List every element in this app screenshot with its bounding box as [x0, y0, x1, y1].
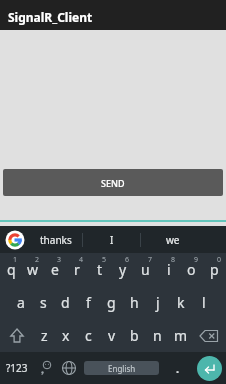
staticText: a	[17, 293, 25, 312]
button[interactable]	[57, 352, 80, 384]
button[interactable]: x	[55, 319, 77, 352]
staticText: 9	[194, 255, 199, 265]
button[interactable]: we	[141, 226, 205, 253]
staticText: w	[27, 260, 39, 279]
button[interactable]: t	[88, 253, 111, 286]
staticText: thanks	[40, 233, 72, 247]
button[interactable]	[0, 319, 33, 352]
button[interactable]: n	[146, 319, 169, 352]
button[interactable]: j	[146, 286, 169, 319]
button[interactable]	[0, 226, 30, 253]
staticText: 0	[217, 255, 222, 265]
button[interactable]: s	[32, 286, 54, 319]
button[interactable]: SignalR_Client	[0, 0, 226, 30]
staticText: g	[107, 293, 116, 312]
button[interactable]: i	[157, 253, 180, 286]
staticText: c	[85, 326, 92, 345]
staticText: 4	[79, 255, 84, 265]
staticText: q	[7, 260, 16, 279]
staticText: SEND	[101, 177, 125, 189]
staticText: 5	[102, 255, 107, 265]
button[interactable]: v	[100, 319, 123, 352]
staticText: o	[187, 260, 196, 279]
staticText: 2	[35, 255, 40, 265]
staticText: z	[41, 326, 48, 345]
staticText: 3	[57, 255, 62, 265]
staticText: f	[86, 293, 91, 312]
staticText: b	[130, 326, 139, 345]
staticText: m	[174, 326, 188, 345]
staticText: .	[176, 361, 180, 376]
staticText: p	[210, 260, 219, 279]
staticText: i	[167, 260, 171, 279]
staticText: ?123	[6, 361, 28, 375]
button[interactable]	[192, 352, 226, 384]
staticText: 7	[148, 255, 153, 265]
button[interactable]: w	[22, 253, 44, 286]
staticText: e	[51, 260, 59, 279]
button[interactable]: f	[77, 286, 100, 319]
button[interactable]	[34, 352, 57, 384]
staticText: 6	[125, 255, 130, 265]
button[interactable]: thanks	[30, 226, 82, 253]
staticText: English	[108, 363, 136, 374]
button[interactable]: m	[169, 319, 192, 352]
staticText: I	[110, 233, 114, 247]
staticText: r	[74, 260, 80, 279]
button[interactable]: z	[33, 319, 55, 352]
button[interactable]: I	[83, 226, 140, 253]
button[interactable]: SEND	[3, 169, 223, 196]
staticText: 1	[13, 255, 18, 265]
staticText: d	[61, 293, 70, 312]
button[interactable]: o	[180, 253, 203, 286]
staticText: x	[62, 326, 70, 345]
button[interactable]: r	[66, 253, 88, 286]
button[interactable]: c	[77, 319, 100, 352]
staticText: u	[141, 260, 150, 279]
staticText: j	[156, 293, 160, 312]
staticText: t	[97, 260, 103, 279]
button[interactable]: g	[100, 286, 123, 319]
staticText: we	[166, 233, 180, 247]
button[interactable]: b	[123, 319, 146, 352]
button[interactable]: d	[54, 286, 77, 319]
staticText: 8	[171, 255, 176, 265]
staticText: v	[108, 326, 116, 345]
staticText: n	[153, 326, 162, 345]
staticText: y	[119, 260, 127, 279]
button[interactable]: q	[0, 253, 22, 286]
button[interactable]: y	[111, 253, 134, 286]
button[interactable]: u	[134, 253, 157, 286]
button[interactable]	[192, 319, 226, 352]
staticText: l	[202, 293, 206, 312]
button[interactable]: ?123	[0, 352, 34, 384]
button[interactable]: a	[10, 286, 32, 319]
button[interactable]: p	[203, 253, 226, 286]
button[interactable]: h	[123, 286, 146, 319]
button[interactable]: .	[163, 352, 192, 384]
staticText: SignalR_Client	[8, 9, 93, 25]
button[interactable]: k	[169, 286, 192, 319]
button[interactable]: l	[192, 286, 215, 319]
staticText: s	[40, 293, 47, 312]
button[interactable]: English	[80, 352, 163, 384]
button[interactable]: e	[44, 253, 66, 286]
staticText: h	[130, 293, 139, 312]
staticText: k	[177, 293, 185, 312]
